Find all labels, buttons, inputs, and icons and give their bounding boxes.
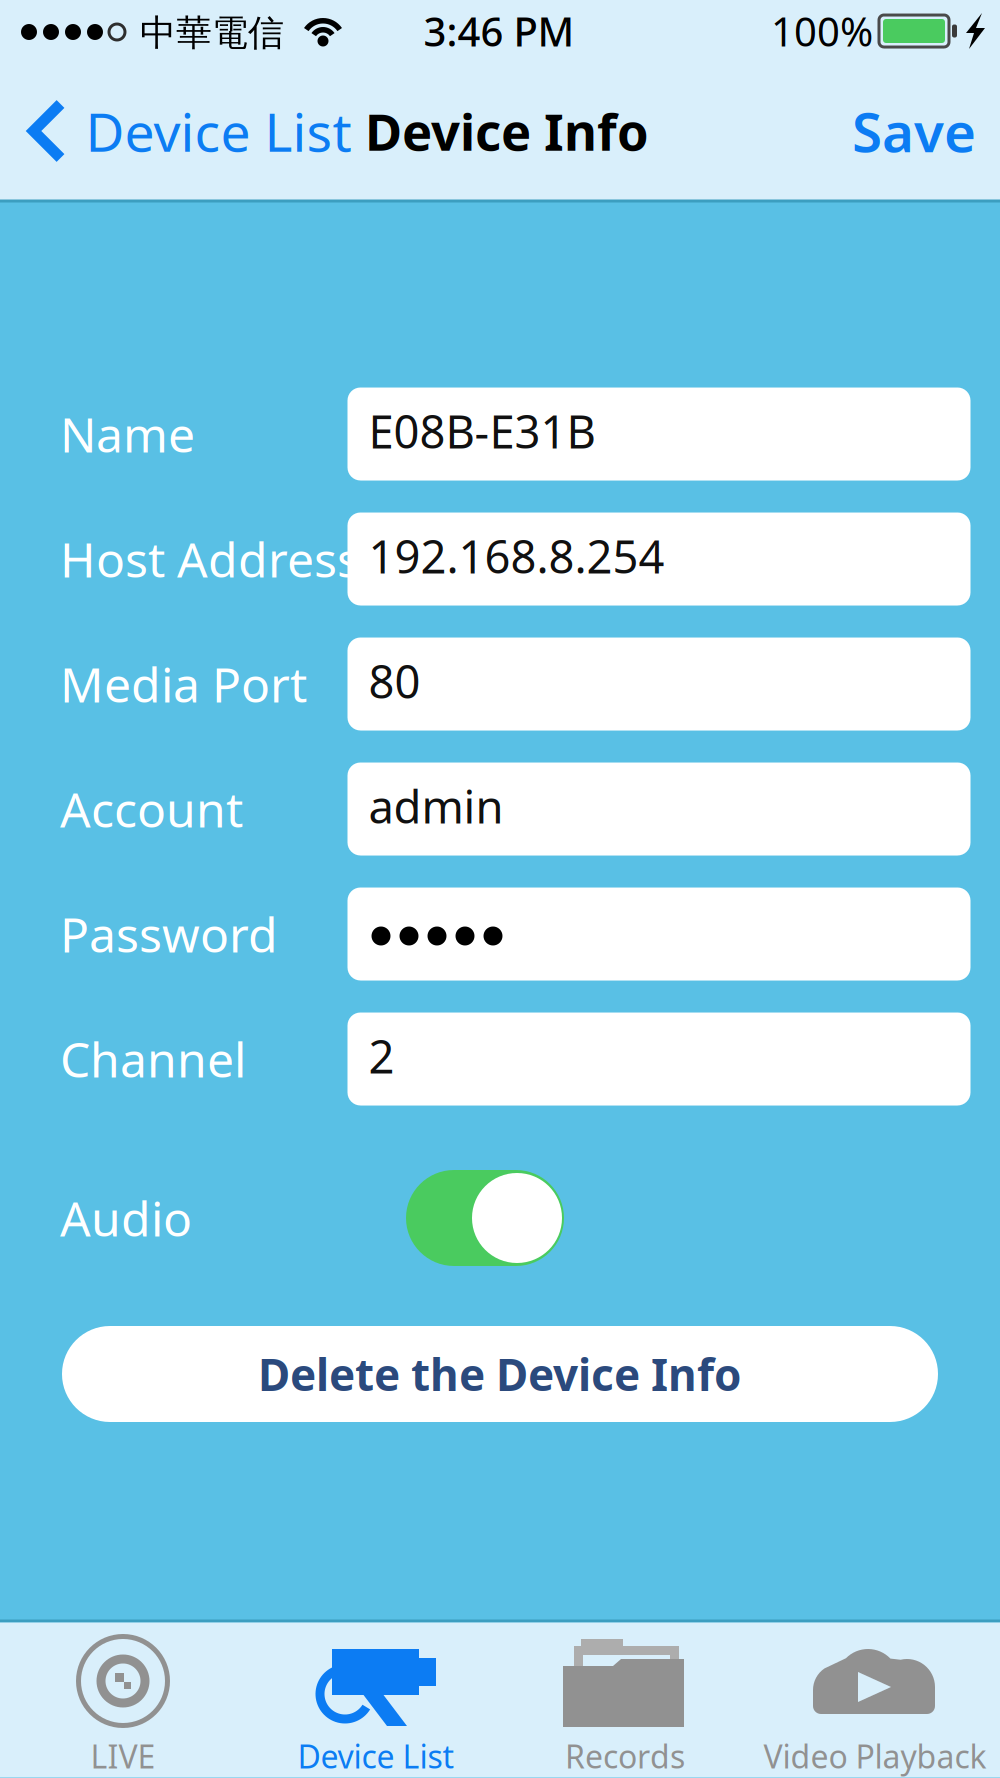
staticText: Device List	[85, 96, 351, 166]
staticText: 中華電信	[140, 11, 284, 55]
staticText: admin	[368, 776, 503, 836]
staticText: Channel	[60, 1027, 246, 1091]
button[interactable]: Device List	[0, 70, 363, 192]
staticText: 80	[368, 651, 420, 711]
staticText: Records	[565, 1735, 685, 1777]
staticText: Device List	[297, 1735, 454, 1777]
staticText: Media Port	[60, 652, 307, 716]
staticText: Name	[60, 402, 195, 466]
staticText: Video Playback	[763, 1735, 986, 1777]
staticText: Delete the Device Info	[258, 1345, 742, 1403]
staticText: 2	[368, 1026, 394, 1086]
staticText: Save	[852, 95, 976, 167]
button[interactable]: Save	[824, 69, 1000, 193]
staticText: E08B-E31B	[368, 401, 595, 461]
staticText: 192.168.8.254	[368, 526, 664, 586]
staticText: LIVE	[90, 1735, 155, 1777]
button[interactable]: Audio on	[406, 1170, 564, 1266]
staticText: Host Address	[60, 527, 360, 591]
staticText: 100%	[771, 4, 873, 57]
button[interactable]: Delete the Device Info	[62, 1326, 938, 1422]
staticText: Audio	[60, 1186, 192, 1250]
staticText: Account	[60, 777, 243, 841]
staticText: Device Info	[365, 97, 649, 165]
staticText: 3:46 PM	[423, 4, 574, 57]
staticText: Password	[60, 902, 278, 966]
